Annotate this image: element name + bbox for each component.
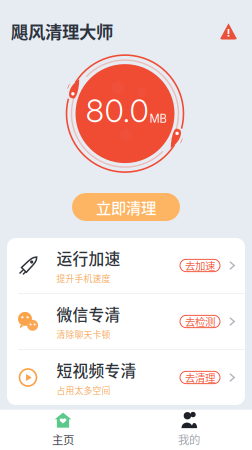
staticText: 清除聊天卡顿 — [56, 328, 110, 340]
button[interactable]: 微信专清 — [7, 294, 245, 349]
staticText: 短视频专清 — [56, 358, 136, 381]
button[interactable]: Warning — [219, 22, 238, 39]
staticText: 去检测 — [185, 314, 215, 329]
staticText: 运行加速 — [56, 246, 120, 269]
staticText: 主页 — [52, 431, 74, 447]
staticText: 提升手机速度 — [56, 272, 110, 284]
staticText: 80.0 — [85, 91, 148, 130]
button[interactable]: 我的 — [126, 406, 252, 450]
staticText: 立即清理 — [96, 196, 156, 218]
staticText: 飓风清理大师 — [11, 18, 113, 44]
staticText: MB — [149, 112, 166, 125]
staticText: 我的 — [178, 431, 200, 447]
button[interactable]: 短视频专清 — [7, 350, 245, 405]
staticText: 占用太多空间 — [56, 384, 110, 396]
staticText: 去加速 — [185, 258, 215, 273]
staticText: 微信专清 — [56, 302, 120, 325]
button[interactable]: 立即清理 — [72, 193, 180, 221]
button[interactable]: 运行加速 — [7, 238, 245, 293]
button[interactable]: 主页 — [0, 406, 126, 450]
staticText: 去清理 — [185, 370, 215, 385]
